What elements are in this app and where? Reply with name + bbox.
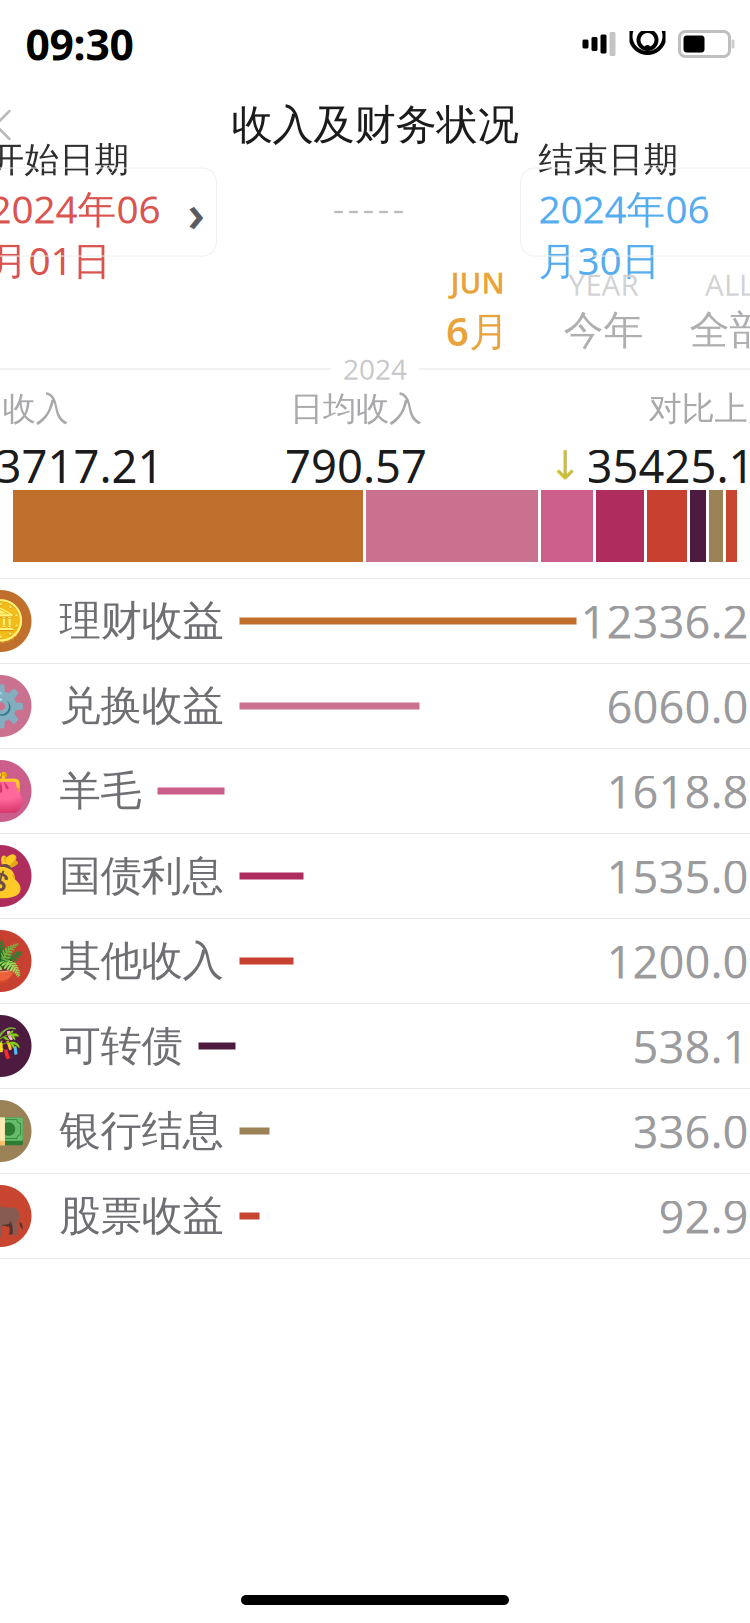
staticText: 可转债 [59,1021,182,1071]
staticText: 理财收益 [59,596,223,646]
staticText: 12336.27 [580,591,750,651]
button[interactable]: ALL [666,264,750,356]
staticText: 今年 [563,306,643,355]
button[interactable]: ⚙️ [0,664,750,748]
staticText: 6月 [446,304,509,357]
staticText: 收入及财务状况 [231,100,518,150]
staticText: 💰 [0,853,25,899]
staticText: 日均收入 [290,388,422,429]
staticText: 790.57 [285,435,427,496]
button[interactable]: 开始日期 [0,168,216,256]
staticText: 🪴 [0,938,25,984]
staticText: 国债利息 [59,851,223,901]
staticText: YEAR [568,265,638,304]
button[interactable]: Close [0,93,27,157]
staticText: 2024年06月30日 [538,183,709,286]
button[interactable]: 🐂 [0,1174,750,1258]
staticText: JUN [450,263,504,302]
staticText: 👛 [0,768,25,814]
button[interactable]: 🪴 [0,919,750,1003]
staticText: 🐂 [0,1193,25,1239]
button[interactable]: 🪙 [0,579,750,663]
button[interactable]: 👛 [0,749,750,833]
staticText: 23717.21 [0,435,163,496]
staticText: › [187,178,204,246]
staticText: ⚙️ [0,683,25,729]
button[interactable]: JUN [414,264,540,356]
staticText: 2024 [343,350,407,388]
staticText: 其他收入 [59,936,223,986]
staticText: ALL [705,265,750,304]
staticText: 💵 [0,1108,25,1154]
button[interactable]: 💵 [0,1089,750,1173]
staticText: 1535.00 [606,846,750,906]
staticText: 🪙 [0,598,25,644]
staticText: 银行结息 [59,1106,223,1156]
staticText: 全部 [689,306,750,355]
staticText: 股票收益 [59,1191,223,1241]
staticText: 35425.18 [586,435,750,496]
staticText: 1200.00 [606,931,750,991]
staticText: 月收入 [0,388,68,429]
staticText: ↓ [548,443,582,488]
button[interactable]: 💰 [0,834,750,918]
staticText: 对比上月 [648,388,750,429]
staticText: 兑换收益 [59,681,223,731]
button[interactable]: YEAR [540,264,666,356]
staticText: 09:30 [25,16,133,72]
staticText: 2024年06月01日 [0,183,160,286]
staticText: 1618.80 [606,761,750,821]
staticText: 92.91 [658,1186,750,1246]
staticText: 336.05 [632,1101,750,1161]
staticText: 开始日期 [0,138,129,181]
staticText: 6060.00 [606,676,750,736]
button[interactable]: 结束日期 [520,168,750,256]
staticText: 🎋 [0,1023,25,1069]
staticText: 羊毛 [59,766,141,816]
staticText: 结束日期 [538,138,678,181]
staticText: 538.18 [632,1016,750,1076]
button[interactable]: 🎋 [0,1004,750,1088]
